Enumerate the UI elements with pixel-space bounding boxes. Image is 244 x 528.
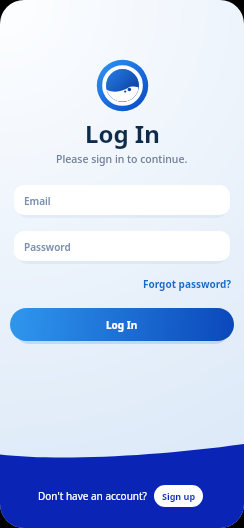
staticText: Password bbox=[24, 240, 71, 254]
staticText: Log In bbox=[85, 117, 160, 150]
button[interactable]: Log In bbox=[10, 308, 234, 341]
staticText: Email bbox=[24, 194, 51, 208]
button[interactable]: Forgot password? bbox=[143, 277, 232, 291]
button[interactable]: Email bbox=[14, 185, 230, 215]
button[interactable]: Sign up bbox=[154, 485, 203, 507]
staticText: Forgot password? bbox=[143, 277, 232, 291]
staticText: Please sign in to continue. bbox=[56, 152, 188, 166]
button[interactable]: Password bbox=[14, 231, 230, 261]
staticText: Log In bbox=[106, 318, 138, 332]
staticText: Sign up bbox=[162, 490, 196, 502]
staticText: Don't have an account? bbox=[38, 489, 147, 503]
